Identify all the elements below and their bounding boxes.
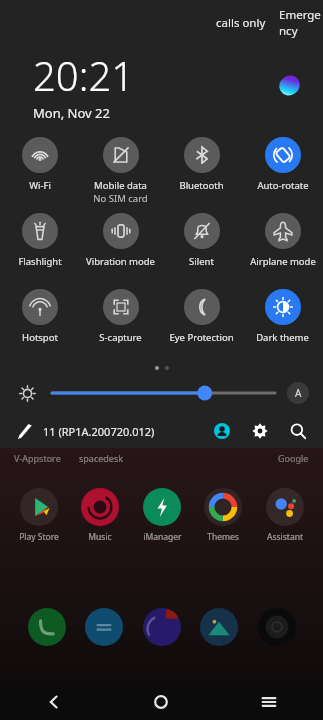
button[interactable]: Assistant bbox=[256, 488, 314, 543]
staticText: Auto-rotate bbox=[257, 179, 309, 192]
button[interactable]: App bbox=[258, 608, 296, 646]
button[interactable]: Eye Protection bbox=[161, 284, 242, 360]
button[interactable]: App bbox=[143, 608, 181, 646]
button[interactable]: Recents bbox=[215, 684, 323, 720]
staticText: Assistant bbox=[267, 531, 303, 543]
staticText: iManager bbox=[143, 531, 182, 543]
staticText: Play Store bbox=[19, 531, 59, 543]
staticText: A bbox=[295, 386, 302, 400]
button[interactable]: Dark theme bbox=[242, 284, 323, 360]
button[interactable]: Silent bbox=[161, 208, 242, 284]
staticText: Hotspot bbox=[22, 331, 58, 344]
button[interactable]: Search bbox=[286, 419, 310, 443]
button[interactable]: Hotspot bbox=[0, 284, 80, 360]
staticText: 20:21 bbox=[33, 48, 135, 102]
staticText: Silent bbox=[189, 255, 214, 268]
button[interactable]: Flashlight bbox=[0, 208, 80, 284]
button[interactable]: Back bbox=[0, 684, 107, 720]
staticText: Google bbox=[278, 452, 309, 464]
button[interactable] bbox=[52, 380, 275, 406]
button[interactable]: iManager bbox=[133, 488, 191, 543]
button[interactable]: Themes bbox=[194, 488, 252, 543]
staticText: Mobile data bbox=[94, 179, 147, 192]
staticText: Bluetooth bbox=[179, 179, 224, 192]
staticText: No SIM card bbox=[93, 192, 148, 205]
staticText: Themes bbox=[207, 531, 239, 543]
button[interactable]: S-capture bbox=[80, 284, 161, 360]
staticText: S-capture bbox=[99, 331, 142, 344]
staticText: 11 (RP1A.200720.012) bbox=[43, 424, 155, 439]
staticText: Eye Protection bbox=[169, 331, 234, 344]
button[interactable]: App bbox=[200, 608, 238, 646]
button[interactable]: Music bbox=[71, 488, 129, 543]
staticText: Music bbox=[88, 531, 112, 543]
staticText: Dark theme bbox=[256, 331, 309, 344]
button[interactable]: Mobile data bbox=[80, 132, 161, 208]
button[interactable]: Auto-rotate bbox=[242, 132, 323, 208]
button[interactable]: App bbox=[85, 608, 123, 646]
button[interactable]: Wi-Fi bbox=[0, 132, 80, 208]
staticText: V-Appstore bbox=[14, 452, 61, 464]
staticText: Wi-Fi bbox=[29, 179, 51, 192]
staticText: Flashlight bbox=[18, 255, 62, 268]
button[interactable]: User bbox=[210, 419, 234, 443]
staticText: Emergency bbox=[279, 7, 323, 39]
button[interactable]: Airplane mode bbox=[242, 208, 323, 284]
button[interactable]: Settings bbox=[248, 419, 272, 443]
button[interactable]: Auto brightness bbox=[287, 382, 309, 404]
staticText: calls only bbox=[216, 15, 266, 31]
button[interactable]: Bluetooth bbox=[161, 132, 242, 208]
button[interactable]: App bbox=[28, 608, 66, 646]
button[interactable]: Play Store bbox=[10, 488, 68, 543]
button[interactable]: Vibration mode bbox=[80, 208, 161, 284]
button[interactable]: Brightness bbox=[14, 380, 40, 406]
button[interactable]: Edit bbox=[13, 419, 37, 443]
staticText: Vibration mode bbox=[86, 255, 155, 268]
staticText: spacedesk bbox=[79, 452, 124, 464]
button[interactable]: Home bbox=[107, 684, 215, 720]
staticText: Mon, Nov 22 bbox=[33, 104, 110, 122]
staticText: Airplane mode bbox=[250, 255, 316, 268]
